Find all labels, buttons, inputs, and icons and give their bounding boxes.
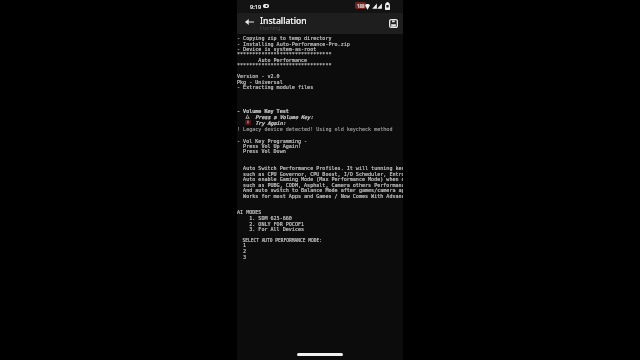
staticText: - Volume Key Test [237,108,403,114]
staticText: 1 [237,242,403,248]
staticText: ! Legacy device detected! Using old keyc… [237,126,403,132]
staticText: Press a Volume Key: [237,114,403,120]
staticText: ******************************* [237,62,403,68]
staticText: - Vol Key Programming - [237,138,403,144]
staticText: SELECT AUTO PERFORMANCE MODE: [237,238,403,243]
staticText: Auto Switch Performance Profiles. It wil… [237,165,403,171]
staticText: ******************************* [237,51,403,57]
staticText: And auto switch to Balance Mode after ga… [237,187,403,193]
staticText: such as PUBG, CODM, Asphalt, Camera othe… [237,182,403,188]
button[interactable]: Back [242,15,256,29]
staticText: 2. ONLY FOR POCOF1 [237,221,403,227]
staticText: 1. SDM 625-660 [237,215,403,221]
staticText: Press Vol Up Again! [237,143,403,149]
staticText: Auto Performance [237,57,403,63]
staticText: Installation [260,15,307,27]
staticText: 2 [237,248,403,254]
staticText: such as CPU Governor, CPU Boost, I/O Sch… [237,171,403,177]
staticText: Auto enable Gaming Mode (Max Performance… [237,176,403,182]
staticText: 3 [237,254,403,260]
staticText: AI MODES [237,209,403,215]
staticText: 3. For All Devices [237,226,403,232]
staticText: Pkg - Universal [237,79,403,85]
staticText: 9:19 [250,3,262,11]
staticText: Works for most Apps and Games / Now Come… [237,193,403,199]
staticText: 188 [357,3,365,9]
staticText: Version - v2.0 [237,73,403,79]
button[interactable]: Save log [387,17,400,30]
staticText: Flashing... [260,24,285,31]
staticText: Press Vol Down [237,148,403,154]
staticText: - Copying zip to temp directory [237,35,403,41]
staticText: Try Again: [237,120,403,126]
staticText: - Installing Auto-Performance-Pro.zip [237,41,403,47]
staticText: - Device is system-as-root [237,46,403,52]
staticText: - Extracting module files [237,84,403,90]
